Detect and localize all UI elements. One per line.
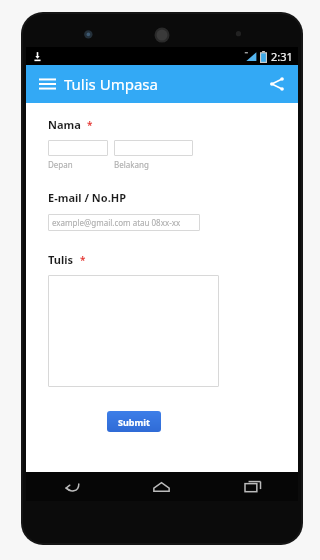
- button[interactable]: Tulis umpasa: [48, 275, 219, 387]
- staticText: Depan: [48, 159, 73, 170]
- button[interactable]: example@gmail.com atau 08xx-xx: [48, 214, 200, 231]
- staticText: Belakang: [114, 159, 149, 170]
- button[interactable]: Back: [26, 472, 116, 501]
- staticText: Nama: [48, 117, 81, 132]
- staticText: example@gmail.com atau 08xx-xx: [52, 217, 181, 228]
- staticText: 2:31: [271, 49, 293, 64]
- staticText: Tulis: [48, 252, 74, 267]
- button[interactable]: Open navigation menu: [34, 71, 60, 97]
- staticText: *: [80, 253, 86, 267]
- staticText: E-mail / No.HP: [48, 190, 127, 205]
- button[interactable]: Text field: [114, 140, 193, 156]
- staticText: *: [87, 118, 93, 132]
- staticText: Tulis Umpasa: [64, 74, 158, 94]
- button[interactable]: Recent apps: [207, 472, 298, 501]
- button[interactable]: Home: [116, 472, 207, 501]
- button[interactable]: Share: [264, 71, 290, 97]
- staticText: Submit: [118, 416, 150, 428]
- button[interactable]: Text field: [48, 140, 108, 156]
- button[interactable]: Submit: [107, 411, 161, 432]
